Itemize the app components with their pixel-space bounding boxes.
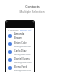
staticText: carla@mail.com — [14, 53, 31, 56]
staticText: SELECT ALL — [20, 29, 32, 32]
staticText: Brian Cole — [14, 41, 27, 45]
staticText: Contacts — [25, 4, 40, 9]
staticText: Daniel Evans — [14, 57, 30, 61]
button[interactable]: Elena Ford — [6, 64, 34, 72]
button[interactable]: Daniel Evans — [6, 56, 34, 64]
staticText: elena@mail.com — [14, 69, 31, 72]
button[interactable]: Brian Cole — [6, 40, 34, 48]
staticText: 4 selected — [8, 29, 19, 32]
staticText: Carla Diaz — [14, 49, 27, 53]
staticText: brian@mail.com — [14, 45, 31, 48]
staticText: Amanda Brown — [14, 32, 32, 40]
button[interactable]: Amanda Brown — [6, 32, 34, 40]
staticText: Elena Ford — [14, 65, 28, 69]
staticText: daniel@mail.com — [14, 61, 32, 64]
staticText: Multiple Selection — [19, 10, 45, 14]
button[interactable]: Carla Diaz — [6, 48, 34, 56]
